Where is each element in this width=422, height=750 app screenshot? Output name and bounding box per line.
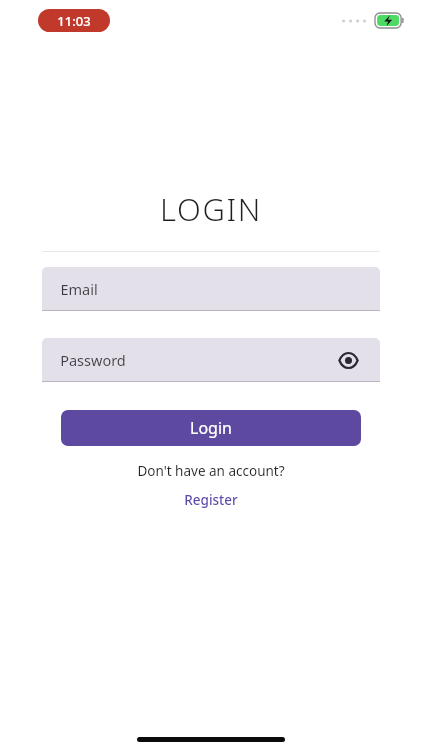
button[interactable]: Password xyxy=(42,338,380,381)
button[interactable]: Login xyxy=(61,410,361,446)
staticText: Register xyxy=(184,491,238,509)
button[interactable]: Show password xyxy=(334,346,362,374)
button[interactable]: Email xyxy=(42,267,380,310)
staticText: LOGIN xyxy=(160,188,262,230)
staticText: 11:03 xyxy=(57,12,91,30)
staticText: Login xyxy=(190,417,232,439)
staticText: Email xyxy=(60,279,98,299)
staticText: Don't have an account? xyxy=(137,462,285,480)
staticText: Password xyxy=(60,350,126,370)
button[interactable]: Register xyxy=(178,489,244,511)
